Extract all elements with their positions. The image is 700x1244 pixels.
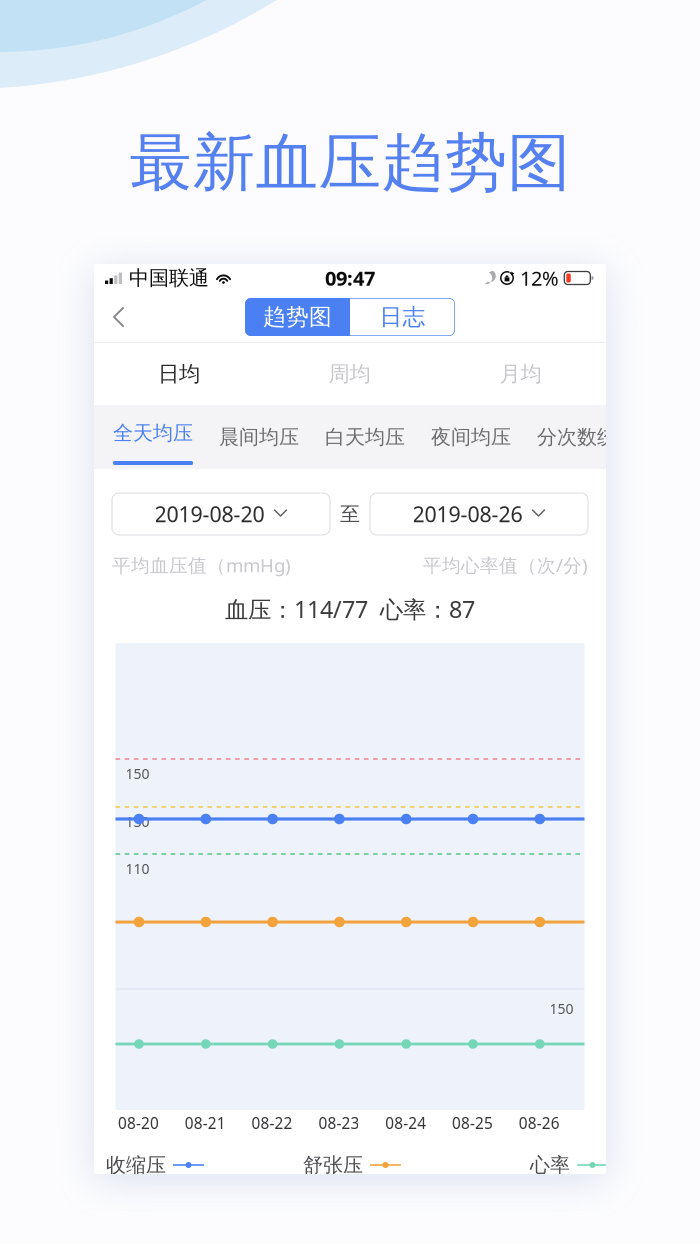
staticText: 2019-08-20: [154, 499, 264, 529]
staticText: 夜间均压: [431, 424, 511, 450]
button[interactable]: 日均: [94, 344, 264, 404]
button[interactable]: 全天均压: [94, 405, 206, 469]
staticText: 平均血压值（mmHg): [112, 552, 291, 578]
staticText: 08-20: [118, 1113, 159, 1133]
button[interactable]: 白天均压: [312, 405, 418, 469]
staticText: 110: [125, 859, 149, 878]
staticText: 最新血压趋势图: [129, 123, 570, 202]
staticText: 月均: [499, 361, 541, 387]
button[interactable]: 月均: [435, 344, 606, 404]
staticText: 晨间均压: [219, 424, 299, 450]
staticText: 心率: [530, 1152, 570, 1178]
staticText: 白天均压: [325, 424, 405, 450]
staticText: 08-24: [385, 1113, 426, 1133]
staticText: 12%: [520, 264, 559, 292]
staticText: 08-26: [519, 1113, 560, 1133]
button[interactable]: 夜间均压: [418, 405, 524, 469]
staticText: 收缩压: [106, 1152, 166, 1178]
staticText: 周均: [328, 361, 370, 387]
staticText: 08-25: [452, 1113, 493, 1133]
staticText: 09:47: [325, 264, 375, 292]
button[interactable]: 周均: [264, 344, 435, 404]
staticText: 08-21: [185, 1113, 226, 1133]
button[interactable]: Back: [94, 295, 144, 339]
button[interactable]: 2019-08-26: [370, 493, 588, 535]
staticText: 150: [125, 764, 149, 783]
button[interactable]: 2019-08-20: [112, 493, 330, 535]
staticText: 趋势图: [263, 303, 332, 331]
button[interactable]: 晨间均压: [206, 405, 312, 469]
staticText: 平均心率值（次/分): [423, 552, 588, 578]
staticText: 中国联通: [129, 265, 209, 291]
staticText: 至: [340, 501, 360, 527]
staticText: 日志: [379, 303, 425, 331]
staticText: 08-23: [318, 1113, 359, 1133]
staticText: 150: [549, 999, 573, 1018]
button[interactable]: 日志: [350, 298, 455, 336]
staticText: 血压：114/77 心率：87: [225, 593, 475, 625]
button[interactable]: 趋势图: [245, 298, 350, 336]
button[interactable]: 分次数统: [524, 405, 618, 469]
staticText: 130: [125, 812, 149, 831]
staticText: 08-22: [252, 1113, 293, 1133]
staticText: 日均: [158, 361, 200, 387]
staticText: 舒张压: [303, 1152, 363, 1178]
staticText: 分次数统: [537, 424, 617, 450]
staticText: 全天均压: [113, 420, 193, 446]
staticText: 2019-08-26: [412, 499, 522, 529]
